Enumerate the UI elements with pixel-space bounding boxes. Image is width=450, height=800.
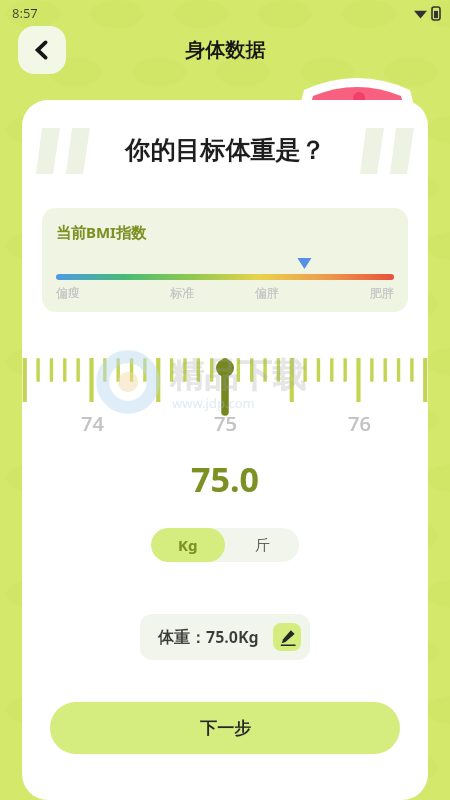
staticText: 8:57 — [12, 4, 38, 22]
staticText: 斤 — [255, 536, 270, 555]
staticText: 75 — [214, 410, 237, 437]
staticText: 74 — [81, 410, 104, 437]
staticText: 下一步 — [200, 718, 251, 739]
button[interactable]: 下一步 — [50, 702, 400, 754]
staticText: 精品下载 — [170, 354, 306, 397]
staticText: 你的目标体重是？ — [125, 135, 325, 166]
staticText: 标准 — [170, 285, 194, 300]
staticText: 76 — [348, 410, 371, 437]
button[interactable]: 返回 — [18, 26, 66, 74]
staticText: Kg — [178, 535, 198, 555]
staticText: 偏瘦 — [56, 285, 80, 300]
staticText: 当前BMI指数 — [56, 222, 146, 242]
button[interactable]: 斤 — [225, 528, 299, 562]
staticText: 体重：75.0Kg — [158, 626, 259, 648]
button[interactable]: Kg — [151, 528, 225, 562]
staticText: 75.0 — [22, 456, 428, 502]
staticText: www.jdp.com — [172, 394, 255, 412]
staticText: 身体数据 — [185, 38, 265, 63]
button[interactable]: 体重：75.0Kg — [140, 614, 310, 660]
button[interactable]: 74 — [22, 360, 428, 456]
button[interactable]: 编辑体重 — [273, 623, 301, 651]
staticText: 偏胖 — [255, 285, 279, 300]
staticText: 肥胖 — [370, 285, 394, 300]
